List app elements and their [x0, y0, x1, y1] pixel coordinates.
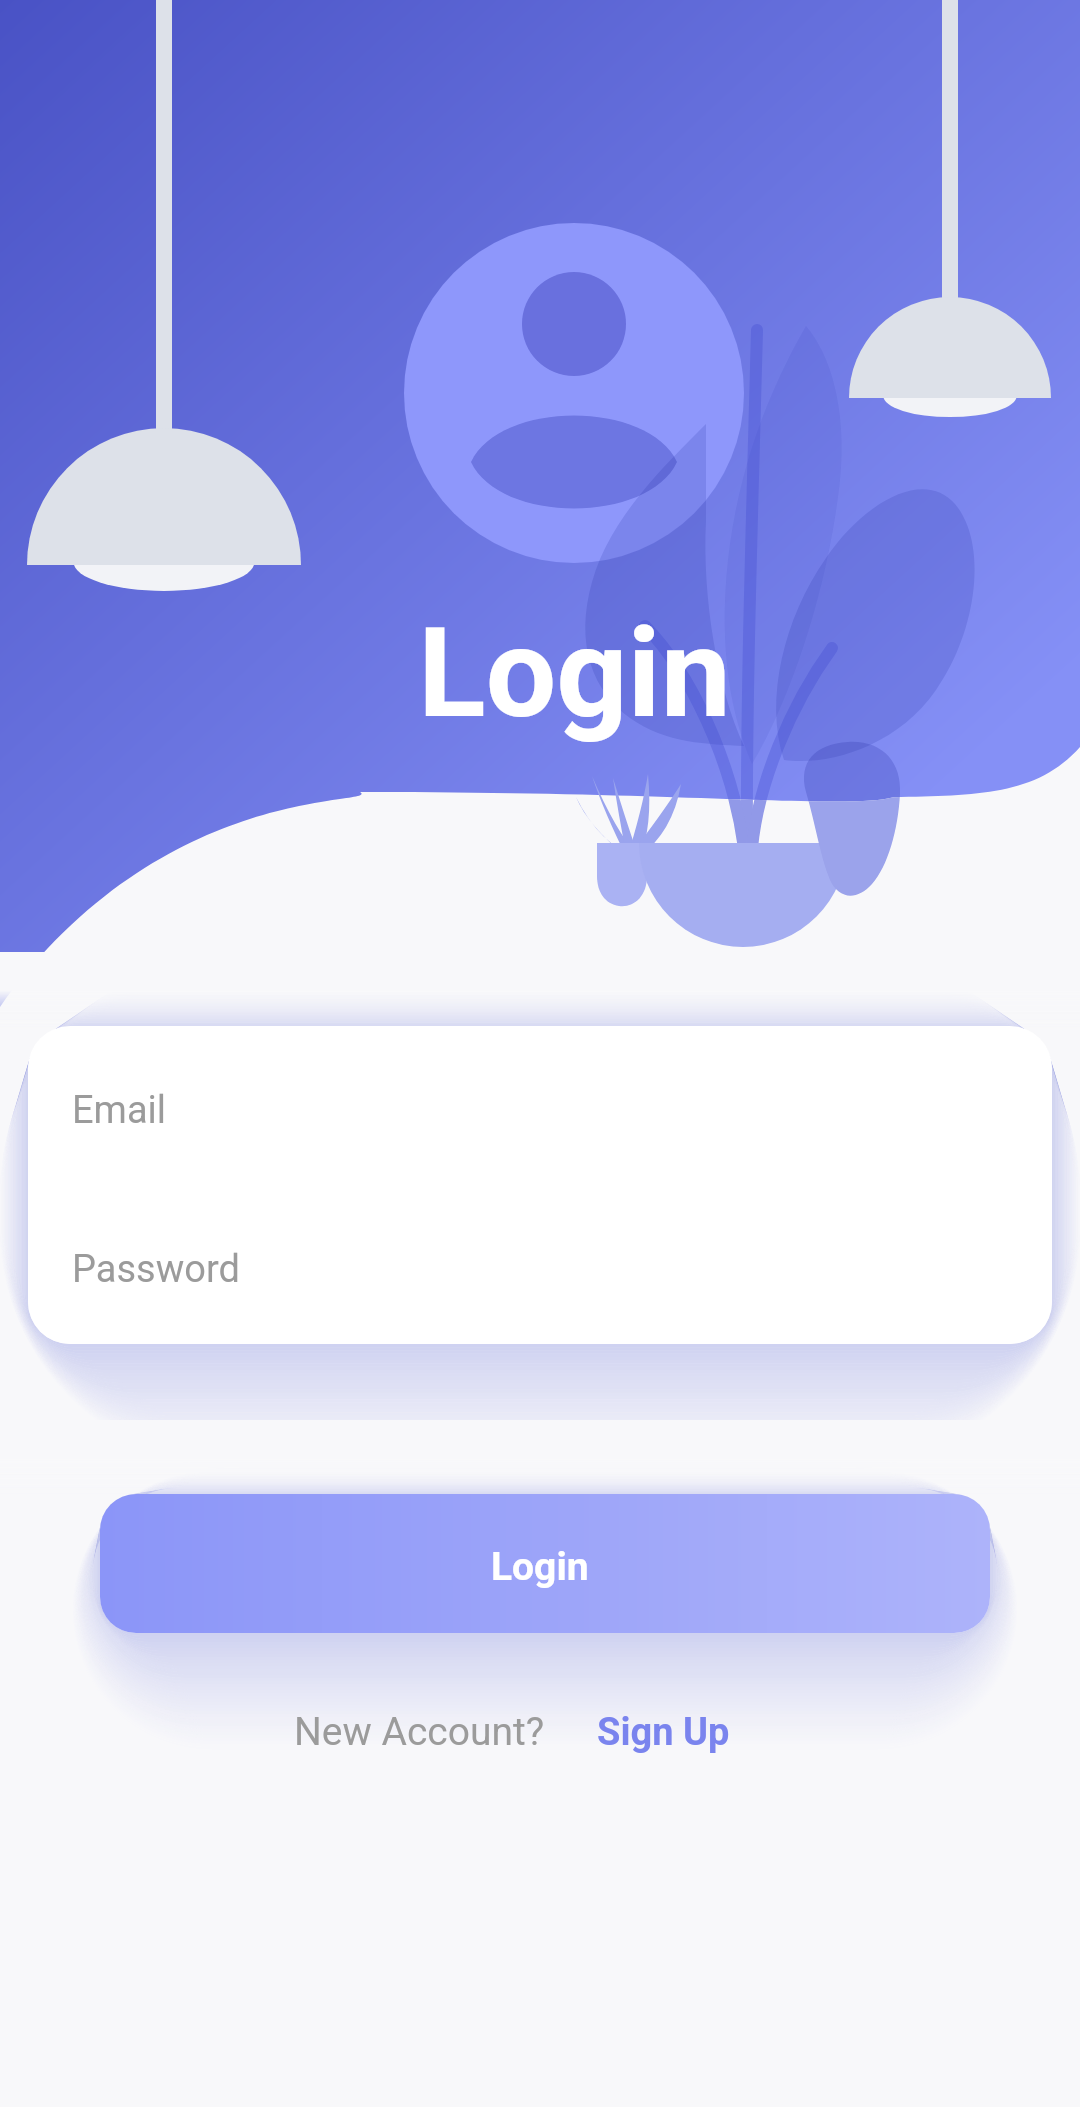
button[interactable]: Login — [100, 1494, 990, 1633]
button[interactable]: New Account? — [294, 1709, 730, 1755]
staticText: Login — [491, 1544, 589, 1590]
button[interactable]: Password — [28, 1210, 1052, 1328]
staticText: Password — [72, 1247, 240, 1292]
staticText: Login — [418, 600, 731, 746]
button[interactable]: Login — [418, 600, 731, 746]
staticText: Sign Up — [597, 1710, 730, 1755]
staticText: New Account? — [294, 1709, 545, 1755]
button[interactable]: Email — [28, 1051, 1052, 1169]
staticText: Email — [72, 1088, 167, 1133]
